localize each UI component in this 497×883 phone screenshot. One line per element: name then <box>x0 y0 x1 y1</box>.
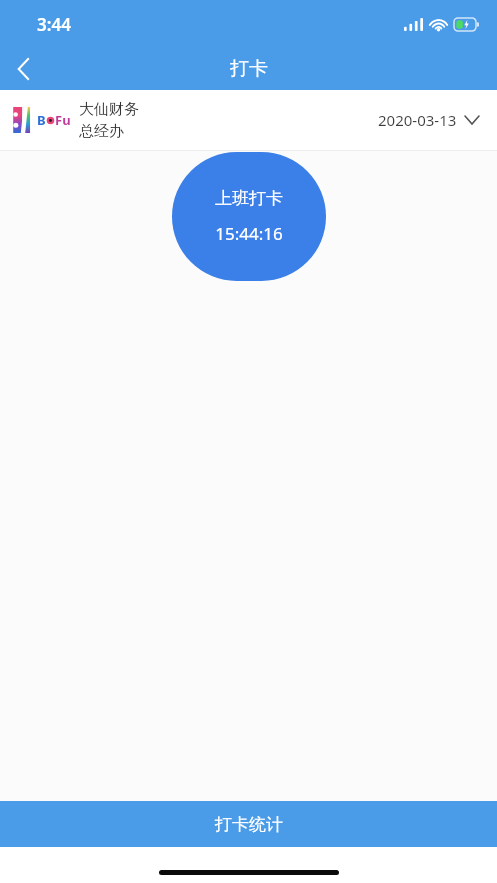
staticText: 15:44:16 <box>215 222 283 245</box>
staticText: 大仙财务 <box>79 100 139 119</box>
staticText: 3:44 <box>37 13 71 36</box>
button[interactable]: 上班打卡 <box>172 152 326 281</box>
button[interactable]: 打卡统计 <box>0 801 497 847</box>
staticText: 上班打卡 <box>215 188 283 209</box>
button[interactable]: Back <box>0 48 46 90</box>
staticText: 打卡 <box>230 57 268 81</box>
button[interactable]: B <box>0 90 497 150</box>
staticText: 2020-03-13 <box>378 110 457 130</box>
staticText: 打卡统计 <box>215 814 283 835</box>
staticText: Fu <box>55 111 71 129</box>
staticText: B <box>37 111 46 129</box>
staticText: 总经办 <box>79 122 124 141</box>
